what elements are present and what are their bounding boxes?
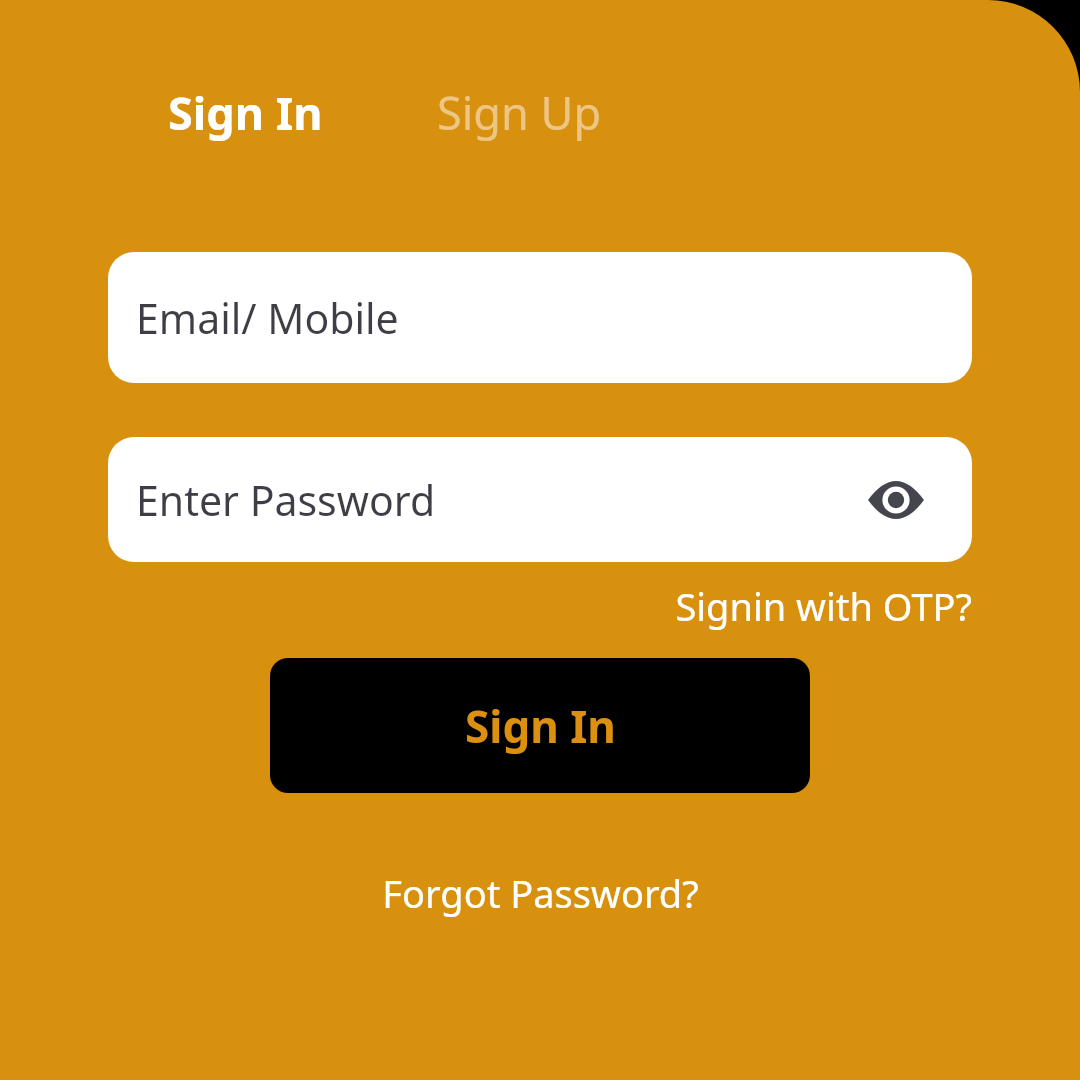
button[interactable]: Sign Up: [382, 78, 656, 146]
button[interactable]: Sign In: [108, 78, 382, 146]
staticText: Sign In: [465, 696, 616, 756]
staticText: Sign Up: [437, 82, 602, 143]
staticText: Forgot Password?: [382, 867, 699, 919]
button[interactable]: Show password: [854, 458, 938, 542]
staticText: Sign In: [168, 82, 323, 143]
button[interactable]: Forgot Password?: [382, 867, 699, 919]
button[interactable]: Enter Password: [108, 437, 972, 562]
button[interactable]: Sign In: [270, 658, 810, 793]
button[interactable]: Email/ Mobile: [108, 252, 972, 383]
staticText: Enter Password: [136, 472, 436, 528]
staticText: Signin with OTP?: [675, 580, 972, 632]
staticText: Email/ Mobile: [136, 290, 399, 346]
button[interactable]: Signin with OTP?: [620, 578, 972, 634]
